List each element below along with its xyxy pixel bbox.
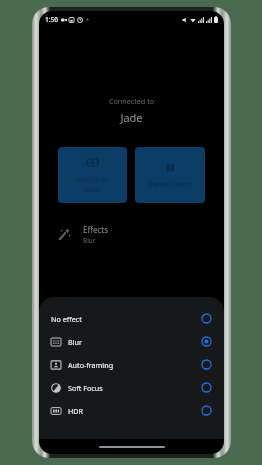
other: Soft Focus (51, 383, 61, 393)
staticText: Connected to (39, 96, 224, 106)
staticText: 1:56 (45, 15, 59, 24)
other: Pause video (164, 161, 177, 174)
other: Auto-framing (51, 360, 61, 370)
button[interactable]: Auto-framing (39, 353, 224, 376)
other: Blur (51, 337, 61, 347)
staticText: No effect (51, 314, 82, 324)
button[interactable]: Blur (39, 330, 224, 353)
button[interactable]: Switch camera (58, 147, 127, 203)
button[interactable]: Effects (39, 221, 224, 248)
staticText: Pause video (139, 179, 201, 189)
other: HDR (51, 406, 61, 416)
staticText: Blur (83, 236, 96, 245)
other: Effects (58, 228, 71, 241)
staticText: Blur (68, 337, 82, 347)
button[interactable]: HDR (39, 399, 224, 422)
button[interactable]: No effect (39, 307, 224, 330)
other: Switch camera (86, 156, 99, 169)
staticText: Soft Focus (68, 383, 103, 393)
button[interactable]: Pause video (135, 147, 205, 203)
staticText: Auto-framing (68, 360, 114, 370)
staticText: Switch to back (62, 174, 123, 194)
staticText: HDR (68, 406, 84, 416)
button[interactable]: Soft Focus (39, 376, 224, 399)
staticText: Effects (83, 224, 109, 235)
staticText: Jade (39, 110, 224, 125)
